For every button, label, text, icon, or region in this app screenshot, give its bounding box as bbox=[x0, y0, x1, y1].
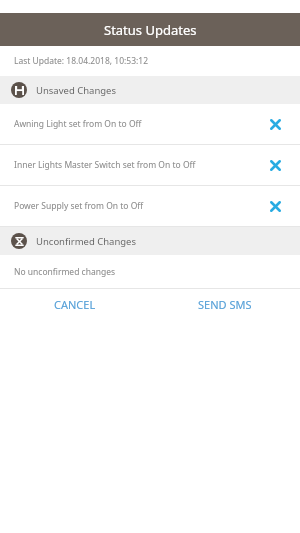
button[interactable]: Remove bbox=[264, 195, 286, 217]
staticText: CANCEL bbox=[54, 297, 96, 312]
staticText: Inner Lights Master Switch set from On t… bbox=[14, 159, 264, 171]
staticText: Awning Light set from On to Off bbox=[14, 118, 264, 130]
button[interactable]: Power Supply set from On to Off bbox=[0, 186, 300, 226]
staticText: Last Update: 18.04.2018, 10:53:12 bbox=[14, 55, 149, 67]
button[interactable]: Awning Light set from On to Off bbox=[0, 104, 300, 144]
button[interactable]: Remove bbox=[264, 113, 286, 135]
button[interactable]: CANCEL bbox=[0, 289, 150, 319]
button[interactable]: SEND SMS bbox=[150, 289, 300, 319]
staticText: No unconfirmed changes bbox=[14, 266, 116, 278]
other: Unsaved bbox=[11, 82, 27, 98]
button[interactable]: Inner Lights Master Switch set from On t… bbox=[0, 145, 300, 185]
staticText: Status Updates bbox=[104, 21, 197, 39]
staticText: Power Supply set from On to Off bbox=[14, 200, 264, 212]
staticText: Unconfirmed Changes bbox=[36, 235, 137, 248]
button[interactable]: Remove bbox=[264, 154, 286, 176]
staticText: Unsaved Changes bbox=[36, 84, 117, 97]
button[interactable]: Unconfirmed bbox=[0, 227, 300, 255]
button[interactable]: Unsaved bbox=[0, 76, 300, 104]
other: Unconfirmed bbox=[11, 233, 27, 249]
staticText: SEND SMS bbox=[198, 297, 252, 312]
